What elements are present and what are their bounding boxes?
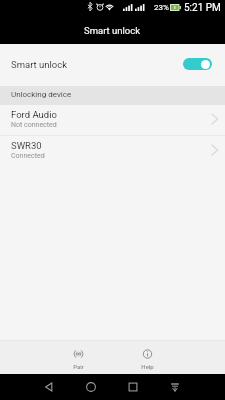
button[interactable]: Ford Audio <box>0 105 225 135</box>
button[interactable]: Pair <box>54 341 102 374</box>
button[interactable]: Smart unlock toggle <box>183 58 212 70</box>
staticText: Smart unlock <box>84 25 141 36</box>
staticText: 5:21 PM <box>184 2 221 14</box>
staticText: Unlocking device <box>11 90 72 99</box>
staticText: Ford Audio <box>11 109 57 120</box>
staticText: 23% <box>154 3 169 12</box>
staticText: Pair <box>73 363 84 370</box>
button[interactable]: Back <box>36 374 62 400</box>
staticText: Help <box>141 363 154 370</box>
button[interactable]: Recents <box>120 374 146 400</box>
staticText: Smart unlock <box>11 59 68 70</box>
staticText: Connected <box>11 152 45 160</box>
staticText: SWR30 <box>11 140 42 151</box>
button[interactable]: Smart unlock <box>0 44 225 86</box>
button[interactable]: Hide navigation bar <box>162 374 188 400</box>
button[interactable]: Help <box>123 341 171 374</box>
button[interactable]: SWR30 <box>0 136 225 166</box>
staticText: Not connected <box>11 121 57 129</box>
button[interactable]: Home <box>78 374 104 400</box>
